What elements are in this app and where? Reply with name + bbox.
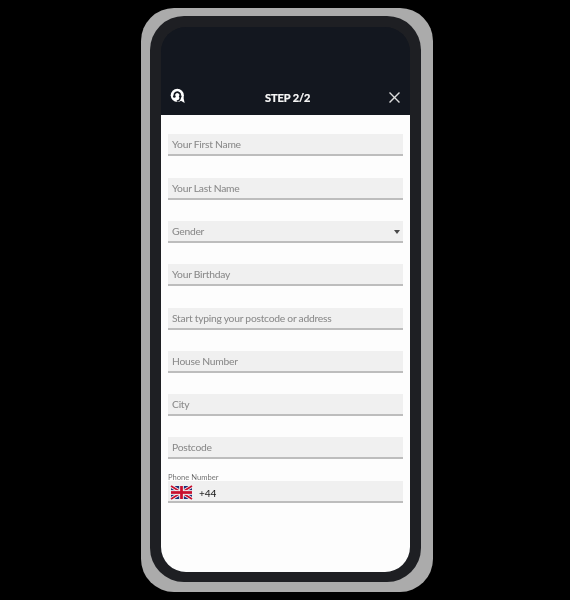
button[interactable]: City (168, 394, 403, 416)
button[interactable]: Your Last Name (168, 178, 403, 200)
button[interactable]: +44 (168, 481, 403, 503)
button[interactable]: House Number (168, 351, 403, 373)
staticText: +44 (199, 487, 217, 499)
button[interactable]: Your First Name (168, 134, 403, 156)
staticText: Postcode (172, 441, 212, 453)
staticText: City (172, 398, 190, 410)
staticText: Your First Name (172, 138, 241, 150)
staticText: Gender (172, 225, 205, 237)
button[interactable]: Gender (168, 221, 403, 243)
button[interactable]: Start typing your postcode or address (168, 308, 403, 330)
staticText: House Number (172, 355, 238, 367)
staticText: Phone Number (168, 472, 219, 481)
staticText: Your Last Name (172, 182, 240, 194)
staticText: Your Birthday (172, 268, 231, 280)
staticText: STEP 2/2 (265, 91, 311, 104)
button[interactable]: Postcode (168, 437, 403, 459)
button[interactable]: Close (383, 86, 405, 108)
staticText: Start typing your postcode or address (172, 312, 332, 324)
button[interactable]: Customer support (166, 84, 190, 108)
button[interactable]: Your Birthday (168, 264, 403, 286)
